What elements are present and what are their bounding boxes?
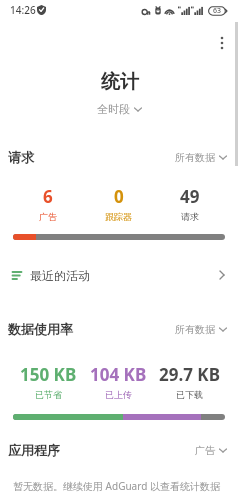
staticText: 统计 [101, 70, 139, 94]
staticText: 全时段 [97, 102, 130, 116]
button[interactable]: 最近的活动 [0, 261, 239, 289]
staticText: 14:26 [10, 3, 36, 17]
staticText: 暂无数据。继续使用 AdGuard 以查看统计数据 [13, 479, 225, 493]
staticText: 应用程序 [8, 442, 60, 458]
staticText: 已上传 [105, 389, 132, 400]
staticText: 已下载 [176, 389, 203, 400]
staticText: 请求 [8, 149, 34, 165]
staticText: 所有数据 [175, 151, 215, 164]
staticText: 29.7 KB [159, 363, 220, 386]
staticText: 广告 [39, 211, 57, 222]
staticText: 49 [180, 185, 200, 208]
staticText: 0 [114, 185, 124, 208]
button[interactable]: 6 [13, 185, 83, 222]
staticText: 104 KB [90, 363, 147, 386]
staticText: 请求 [181, 211, 199, 222]
button[interactable]: 所有数据 [174, 322, 228, 337]
staticText: 6 [43, 185, 53, 208]
staticText: 所有数据 [175, 323, 215, 336]
button[interactable]: 所有数据 [174, 150, 228, 165]
button[interactable]: 0 [83, 185, 154, 222]
button[interactable]: 49 [154, 185, 225, 222]
button[interactable]: 全时段 [95, 101, 144, 117]
button[interactable]: 104 KB [83, 363, 154, 400]
staticText: 已节省 [35, 389, 62, 400]
staticText: 广告 [195, 444, 215, 457]
staticText: 跟踪器 [105, 211, 132, 222]
button[interactable]: 广告 [194, 443, 228, 458]
button[interactable]: 29.7 KB [154, 363, 225, 400]
staticText: 数据使用率 [8, 321, 73, 337]
staticText: 最近的活动 [30, 268, 90, 283]
staticText: 150 KB [20, 363, 77, 386]
staticText: 63 [213, 6, 222, 16]
button[interactable]: 150 KB [13, 363, 83, 400]
button[interactable]: More options [208, 29, 236, 57]
